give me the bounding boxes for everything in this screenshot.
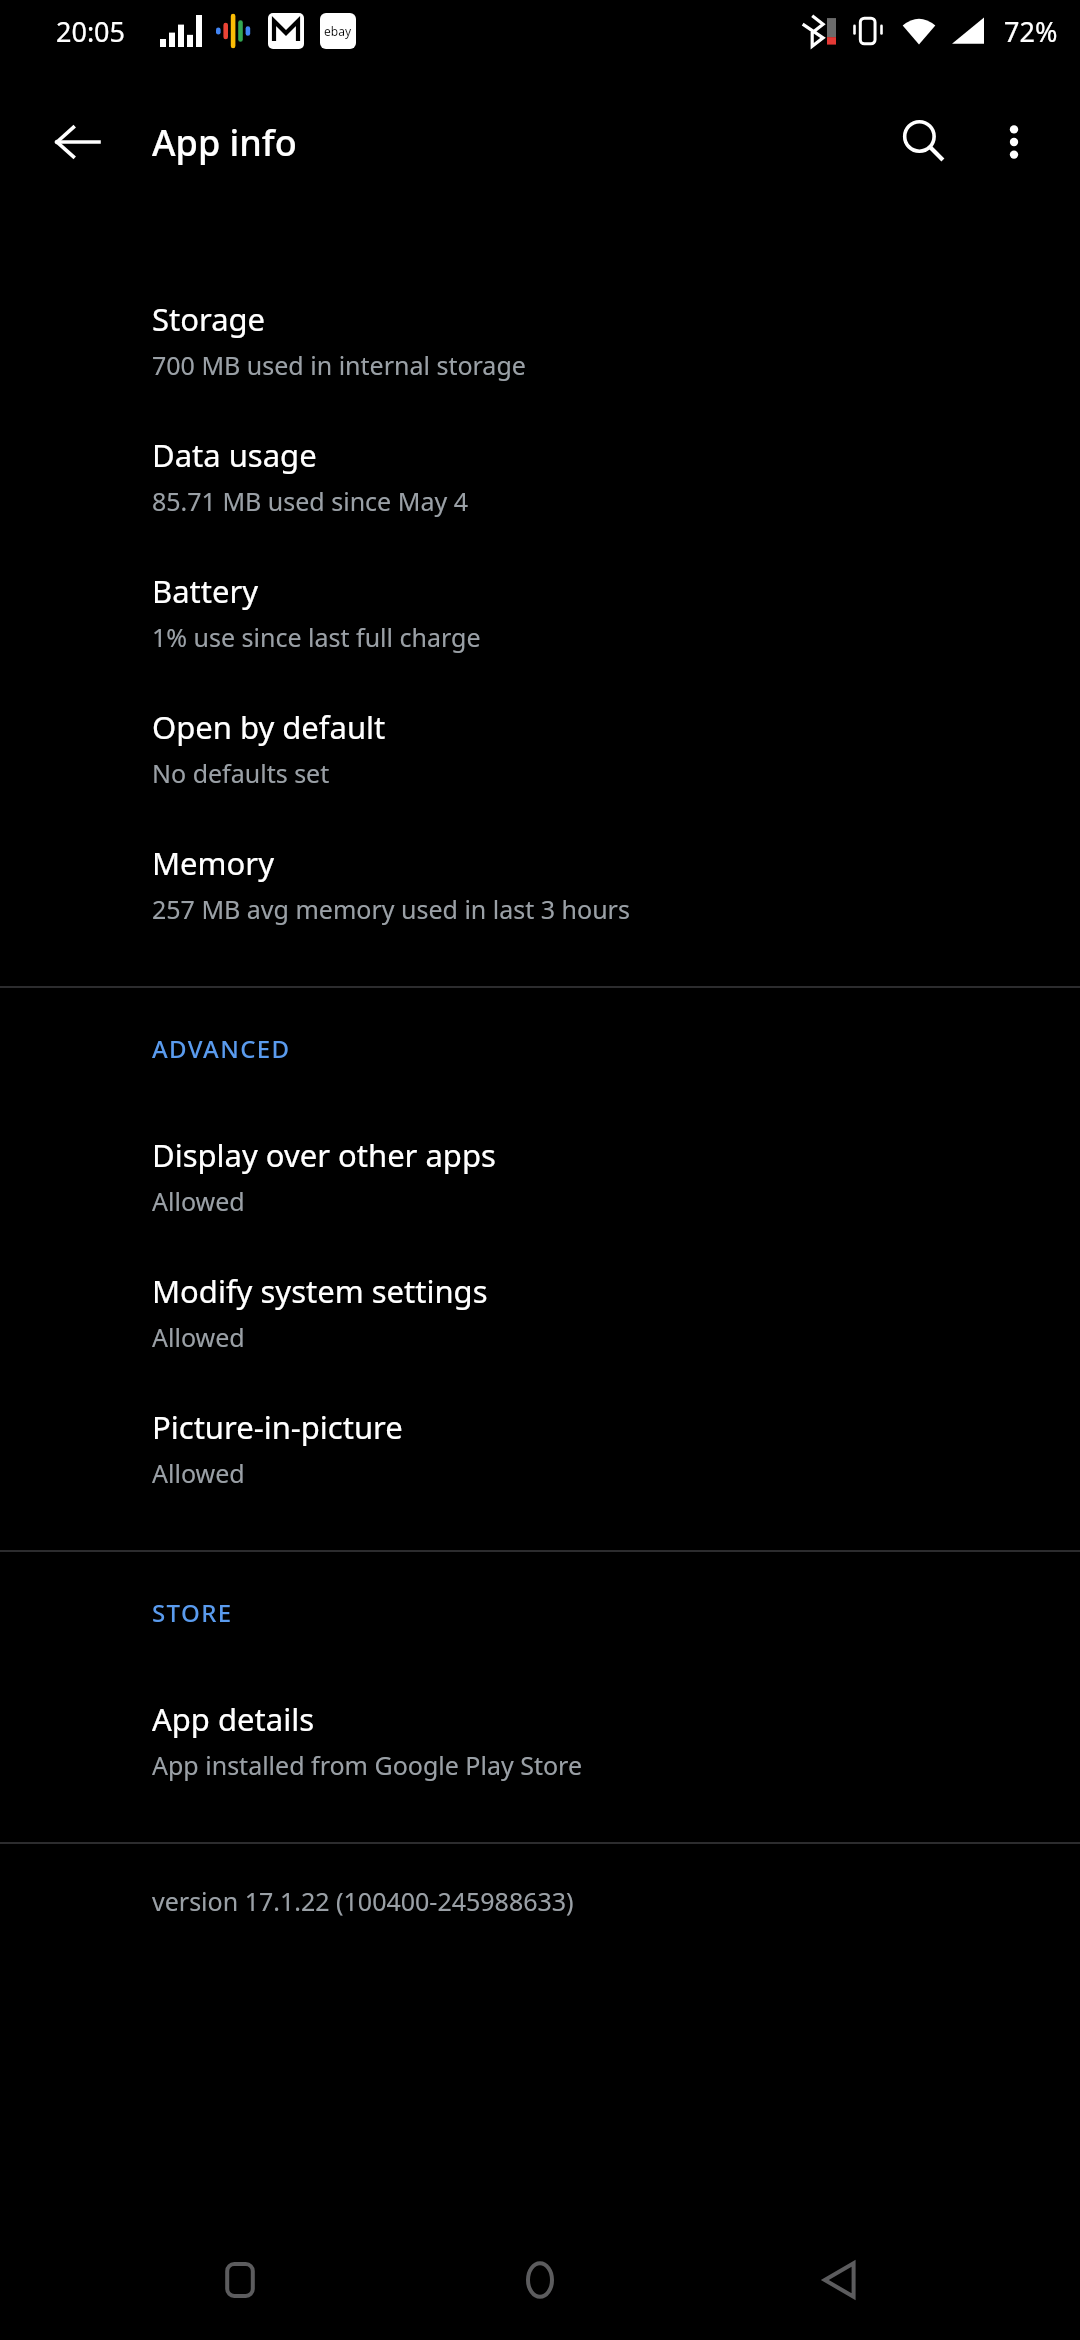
staticText: STORE <box>152 1596 233 1629</box>
button[interactable]: Modify system settings <box>0 1244 1080 1380</box>
staticText: Display over other apps <box>152 1134 496 1176</box>
staticText: Battery <box>152 570 259 612</box>
button[interactable]: More options <box>966 94 1062 190</box>
staticText: 700 MB used in internal storage <box>152 348 526 382</box>
button[interactable]: Display over other apps <box>0 1108 1080 1244</box>
staticText: No defaults set <box>152 756 330 790</box>
staticText: Picture-in-picture <box>152 1406 403 1448</box>
staticText: Modify system settings <box>152 1270 488 1312</box>
staticText: ADVANCED <box>152 1032 291 1065</box>
staticText: 20:05 <box>56 13 126 50</box>
staticText: App info <box>152 118 297 167</box>
staticText: Open by default <box>152 706 386 748</box>
staticText: Memory <box>152 842 274 884</box>
button[interactable]: Storage <box>0 272 1080 408</box>
staticText: 85.71 MB used since May 4 <box>152 484 468 518</box>
button[interactable]: Search <box>876 94 972 190</box>
staticText: 1% use since last full charge <box>152 620 481 654</box>
button[interactable]: Memory <box>0 816 1080 952</box>
staticText: App installed from Google Play Store <box>152 1748 582 1782</box>
staticText: Allowed <box>152 1456 245 1490</box>
staticText: App details <box>152 1698 314 1740</box>
staticText: 72% <box>1004 13 1058 50</box>
staticText: Storage <box>152 298 266 340</box>
button[interactable]: Open by default <box>0 680 1080 816</box>
button[interactable]: Data usage <box>0 408 1080 544</box>
button[interactable]: Recent apps <box>180 2220 300 2340</box>
button[interactable]: Picture-in-picture <box>0 1380 1080 1516</box>
button[interactable]: Home <box>480 2220 600 2340</box>
staticText: 257 MB avg memory used in last 3 hours <box>152 892 630 926</box>
button[interactable]: App details <box>0 1672 1080 1808</box>
staticText: ebay <box>324 23 352 39</box>
button[interactable]: Battery <box>0 544 1080 680</box>
staticText: Allowed <box>152 1320 245 1354</box>
button[interactable]: Back <box>30 94 126 190</box>
staticText: Data usage <box>152 434 317 476</box>
staticText: version 17.1.22 (100400-245988633) <box>152 1884 574 1918</box>
button[interactable]: Back <box>780 2220 900 2340</box>
staticText: Allowed <box>152 1184 245 1218</box>
